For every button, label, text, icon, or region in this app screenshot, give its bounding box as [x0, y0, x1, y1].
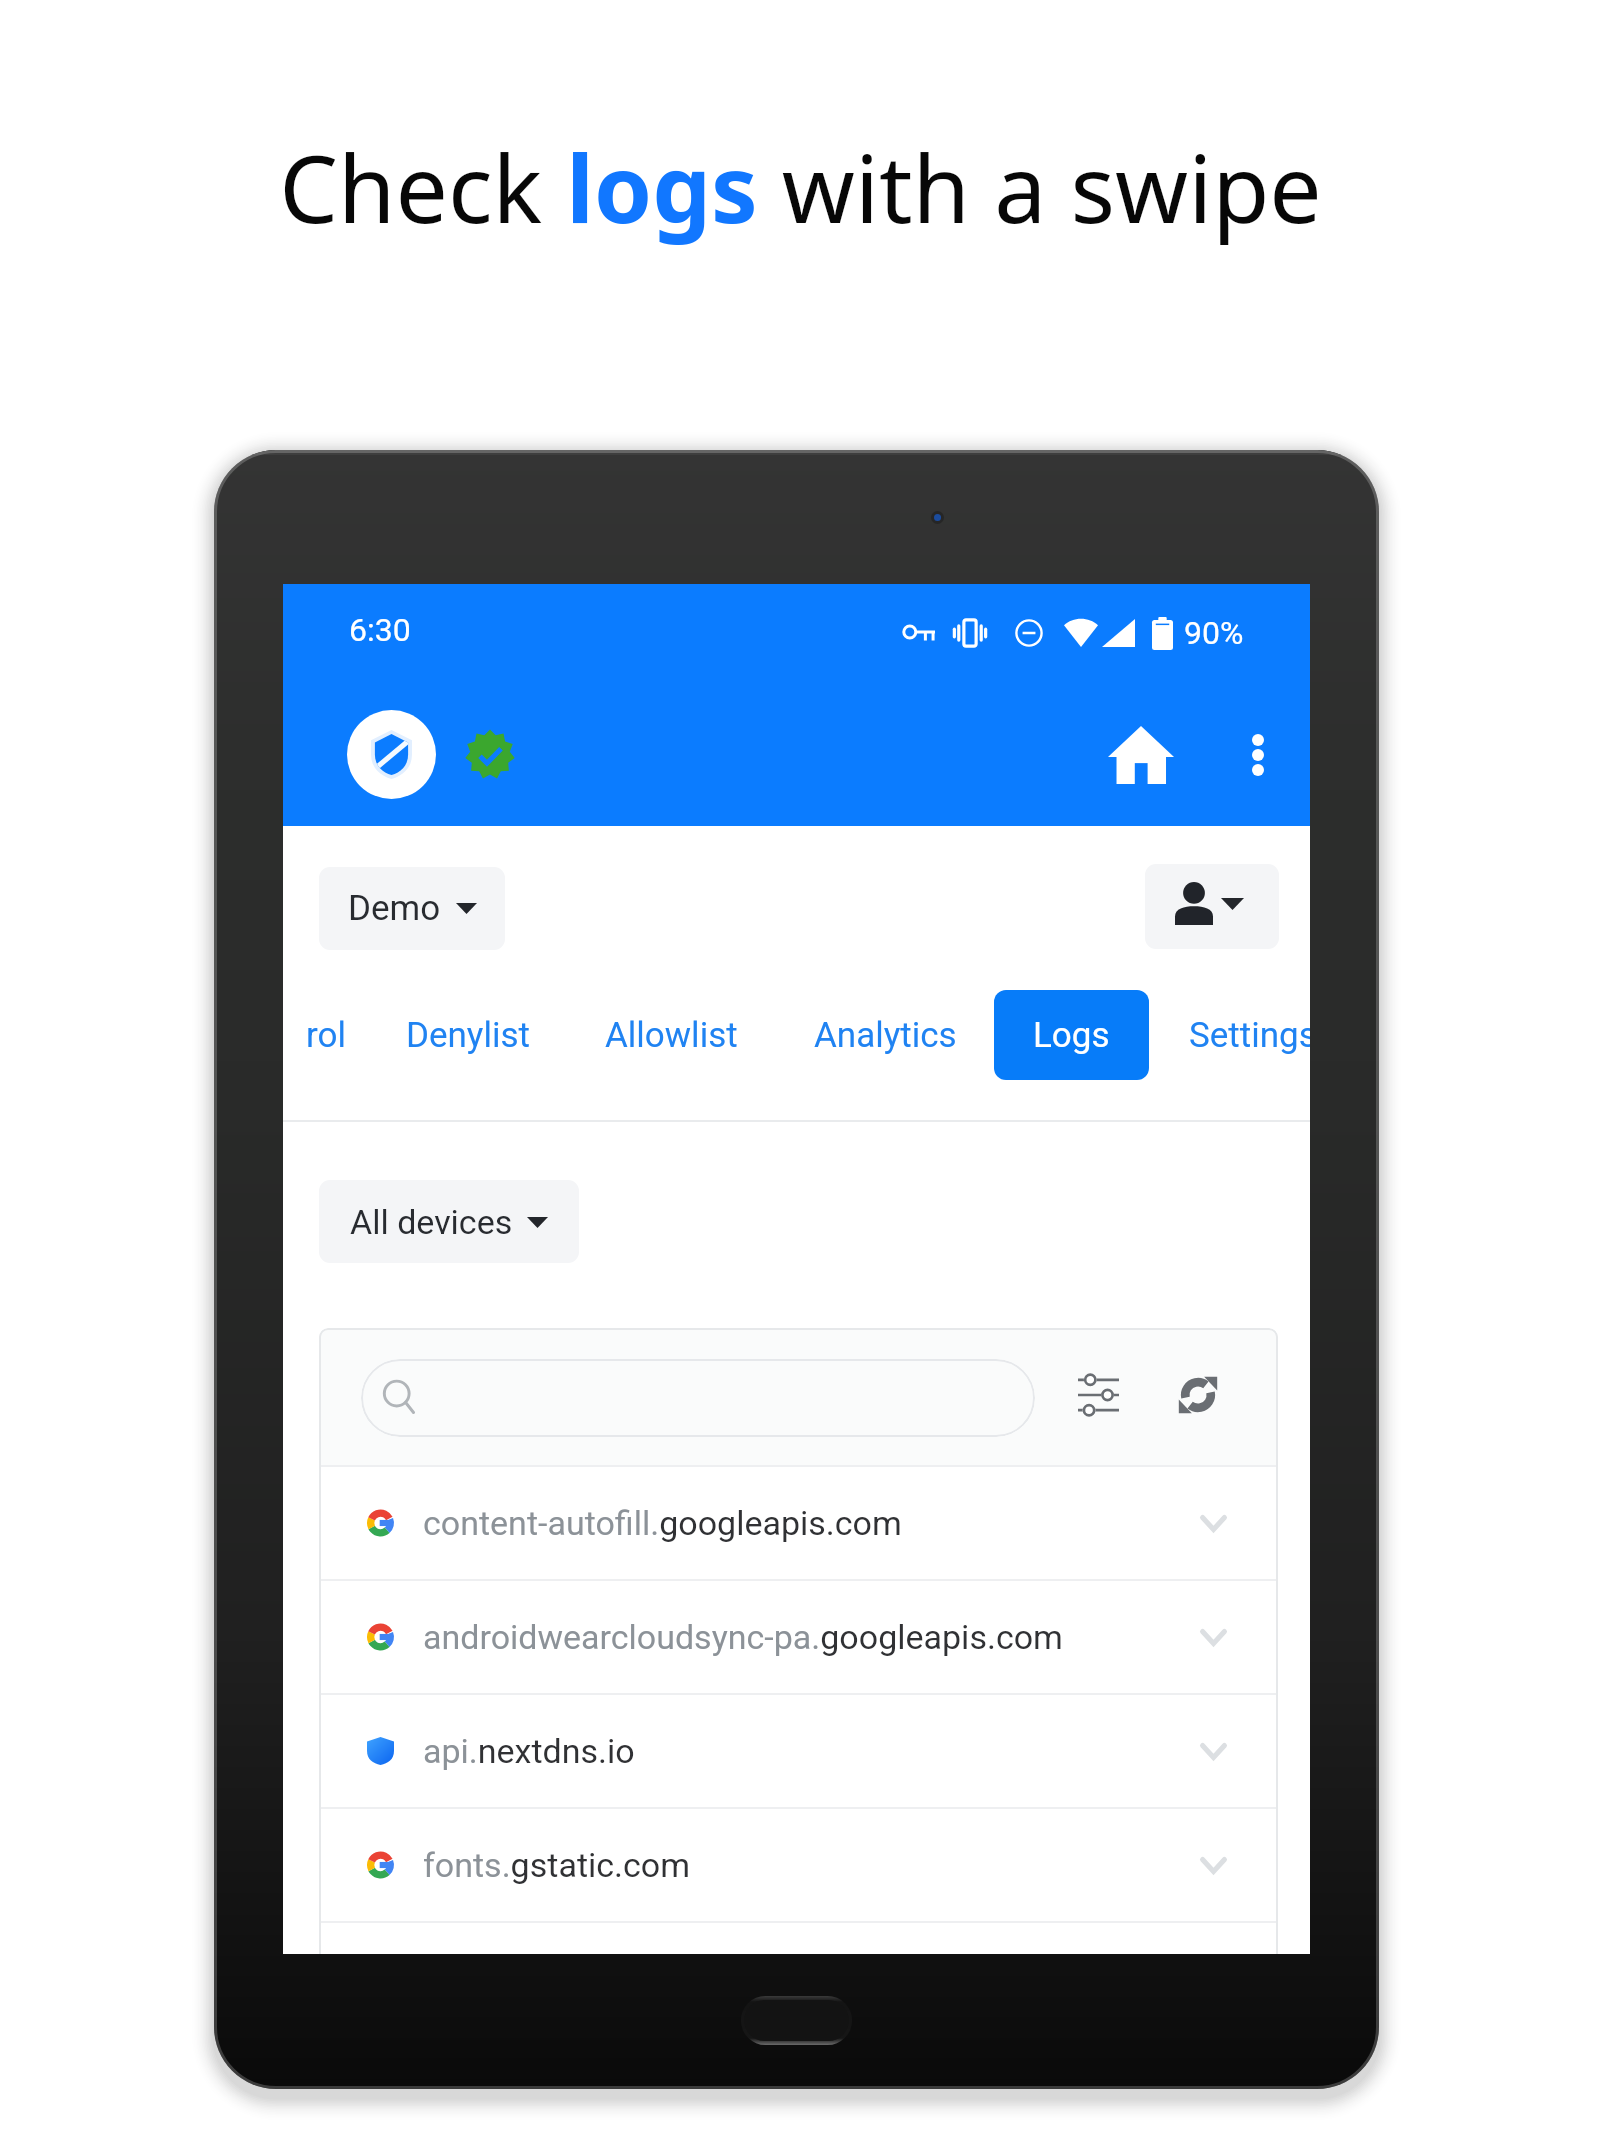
button[interactable]: Refresh	[1155, 1352, 1241, 1438]
button[interactable]: Home	[1098, 712, 1184, 798]
staticText: Denylist	[406, 1015, 530, 1056]
staticText: Demo	[348, 888, 441, 929]
button[interactable]: Analytics	[814, 995, 957, 1075]
button[interactable]: Logs	[994, 990, 1149, 1080]
staticText: Allowlist	[605, 1015, 738, 1056]
button[interactable]: Search	[361, 1359, 1035, 1437]
button[interactable]: Filter	[1055, 1352, 1141, 1438]
staticText: androidwearcloudsync-pa.googleapis.com	[423, 1617, 1063, 1657]
staticText: Settings	[1189, 1015, 1310, 1056]
staticText: Logs	[1033, 1015, 1110, 1056]
staticText: fonts.gstatic.com	[423, 1845, 691, 1885]
staticText: api.nextdns.io	[423, 1731, 635, 1771]
staticText: rol	[306, 1015, 346, 1056]
staticText: Analytics	[814, 1015, 957, 1056]
button[interactable]: Allowlist	[605, 995, 738, 1075]
button[interactable]: Denylist	[406, 995, 530, 1075]
button[interactable]: Demo	[319, 867, 505, 950]
staticText: All devices	[350, 1202, 513, 1242]
button[interactable]: NextDNS	[347, 710, 436, 799]
staticText: 90%	[1184, 614, 1244, 652]
button[interactable]: content-autofill.googleapis.com	[319, 1467, 1278, 1579]
button[interactable]: api.nextdns.io	[319, 1695, 1278, 1807]
button[interactable]: androidwearcloudsync-pa.googleapis.com	[319, 1581, 1278, 1693]
button[interactable]: More options	[1215, 712, 1301, 798]
staticText: 6:30	[349, 611, 411, 649]
button[interactable]: Account	[1145, 864, 1279, 949]
button[interactable]: All devices	[319, 1180, 579, 1263]
staticText: Check logs with a swipe	[279, 124, 1322, 251]
button[interactable]: fonts.gstatic.com	[319, 1809, 1278, 1921]
button[interactable]: rol	[306, 995, 346, 1075]
staticText: content-autofill.googleapis.com	[423, 1503, 902, 1543]
button[interactable]: Settings	[1189, 995, 1310, 1075]
